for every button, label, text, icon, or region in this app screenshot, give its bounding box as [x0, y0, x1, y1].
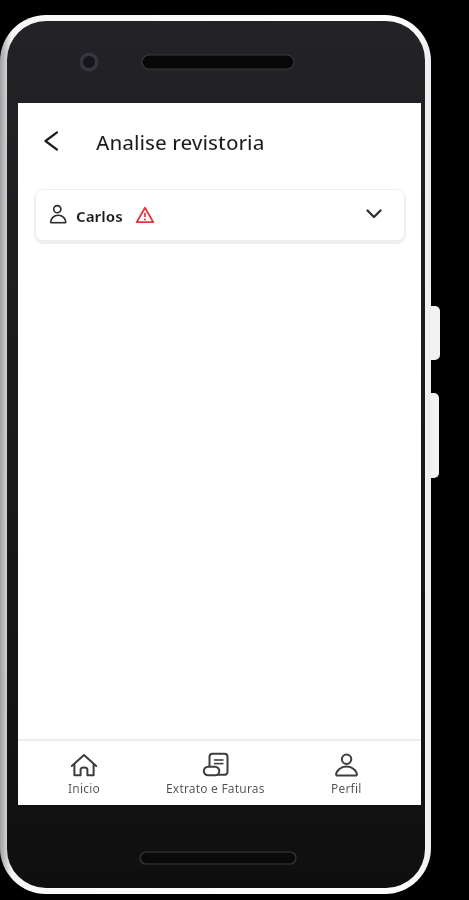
button[interactable]	[150, 744, 281, 802]
button[interactable]	[302, 744, 390, 802]
staticText: Analise revistoria	[96, 128, 265, 156]
staticText: Extrato e Faturas	[166, 780, 265, 795]
staticText: Inicio	[68, 780, 100, 795]
staticText: Carlos	[76, 206, 123, 226]
staticText: Perfil	[331, 780, 362, 795]
button[interactable]	[30, 123, 68, 161]
button[interactable]	[40, 744, 128, 802]
button[interactable]	[35, 189, 405, 241]
